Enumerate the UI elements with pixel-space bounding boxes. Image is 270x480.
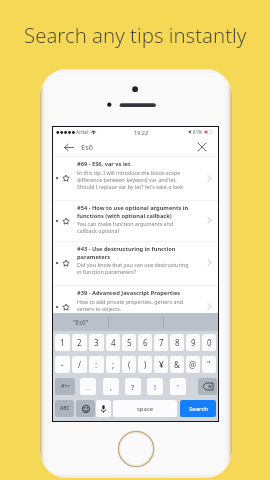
button[interactable]: Search: [180, 400, 216, 417]
button[interactable]: #43 - Use destructuring in function para…: [53, 241, 218, 285]
button[interactable]: Clear search: [195, 140, 209, 154]
button[interactable]: #69 - ES6, var vs let: [53, 156, 218, 200]
staticText: #+=: [61, 383, 70, 390]
staticText: 4: [111, 337, 116, 348]
staticText: #43 - Use destructuring in function para…: [77, 245, 193, 260]
button[interactable]: ;: [106, 356, 120, 373]
button[interactable]: !: [147, 378, 163, 395]
button[interactable]: 7: [154, 334, 168, 351]
button[interactable]: :: [89, 356, 104, 373]
staticText: :: [95, 359, 98, 370]
button[interactable]: Backspace: [198, 378, 217, 395]
staticText: “Es6”: [73, 318, 89, 327]
staticText: In this tip, I will introduce the block-…: [77, 169, 193, 190]
button[interactable]: .: [80, 378, 96, 395]
staticText: 1: [60, 337, 65, 348]
staticText: 6: [143, 337, 148, 348]
staticText: #39 - Advanced Javascript Properties: [77, 289, 181, 297]
staticText: 3: [94, 337, 99, 348]
button[interactable]: 6: [138, 334, 152, 351]
staticText: ,: [110, 382, 113, 392]
button[interactable]: -: [55, 356, 70, 373]
staticText: Airtel: [76, 129, 89, 136]
button[interactable]: &: [170, 356, 184, 373]
button[interactable]: Back: [62, 140, 76, 154]
staticText: 19:22: [134, 129, 149, 136]
staticText: 7: [159, 337, 164, 348]
staticText: !: [154, 382, 157, 392]
button[interactable]: (: [122, 356, 136, 373]
button[interactable]: ABC: [55, 400, 74, 417]
button[interactable]: ): [138, 356, 152, 373]
button[interactable]: ': [170, 378, 186, 395]
staticText: #54 - How to use optional arguments in f…: [77, 204, 193, 219]
staticText: ABC: [60, 405, 70, 412]
button[interactable]: ,: [103, 378, 119, 395]
staticText: (: [128, 359, 131, 370]
staticText: space: [137, 405, 154, 413]
button[interactable]: 3: [89, 334, 104, 351]
staticText: 9: [191, 337, 196, 348]
button[interactable]: /: [72, 356, 87, 373]
staticText: Es6: [81, 142, 94, 152]
staticText: -: [61, 359, 64, 370]
staticText: 5: [127, 337, 132, 348]
staticText: &: [174, 359, 180, 370]
button[interactable]: #39 - Advanced Javascript Properties: [53, 285, 218, 329]
staticText: ): [144, 359, 147, 370]
staticText: .: [87, 382, 90, 392]
button[interactable]: 8: [170, 334, 184, 351]
button[interactable]: #+=: [55, 378, 75, 395]
button[interactable]: ?: [125, 378, 141, 395]
staticText: #69 - ES6, var vs let: [77, 160, 131, 168]
staticText: ¥: [159, 359, 164, 370]
button[interactable]: space: [113, 400, 177, 417]
staticText: Search any tips instantly: [24, 21, 247, 49]
staticText: @: [189, 359, 197, 370]
button[interactable]: @: [186, 356, 200, 373]
staticText: ?: [131, 382, 135, 392]
staticText: Did you know that you can use destructur…: [77, 261, 193, 275]
button[interactable]: “Es6”: [53, 313, 108, 331]
staticText: ': [177, 382, 179, 392]
button[interactable]: 4: [106, 334, 120, 351]
staticText: You can make function arguments and call…: [77, 220, 193, 234]
button[interactable]: 0: [202, 334, 216, 351]
button[interactable]: ": [202, 356, 216, 373]
button[interactable]: 5: [122, 334, 136, 351]
staticText: 2: [77, 337, 82, 348]
button[interactable]: Emoji keyboard: [76, 400, 95, 417]
button[interactable]: 9: [186, 334, 200, 351]
staticText: How to add private properties, getters a…: [77, 298, 193, 312]
staticText: 81%: [193, 129, 203, 135]
button[interactable]: 1: [55, 334, 70, 351]
staticText: Search: [189, 405, 208, 413]
staticText: ;: [112, 359, 115, 370]
button[interactable]: 2: [72, 334, 87, 351]
staticText: 8: [175, 337, 180, 348]
staticText: ": [207, 359, 211, 370]
staticText: 0: [207, 337, 212, 348]
staticText: /: [78, 359, 81, 370]
button[interactable]: ¥: [154, 356, 168, 373]
button[interactable]: Dictation: [96, 400, 111, 417]
button[interactable]: #54 - How to use optional arguments in f…: [53, 200, 218, 242]
